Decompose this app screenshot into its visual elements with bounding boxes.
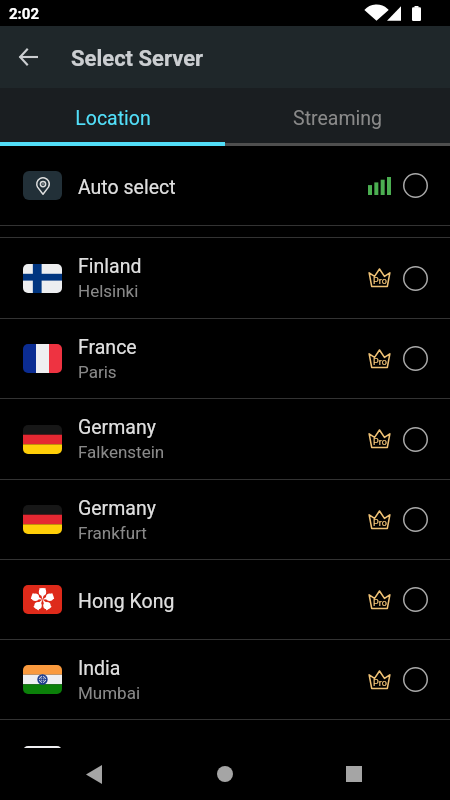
staticText: Falkenstein bbox=[78, 442, 165, 462]
staticText: 2:02 bbox=[9, 5, 40, 23]
button[interactable]: Location bbox=[0, 88, 225, 146]
button[interactable]: Hong Kong bbox=[0, 560, 450, 639]
staticText: Frankfurt bbox=[78, 523, 147, 543]
button[interactable]: Indonesia bbox=[0, 720, 450, 748]
staticText: Pro bbox=[373, 276, 387, 287]
staticText: Auto select bbox=[78, 176, 176, 199]
button[interactable]: Germany bbox=[0, 480, 450, 559]
button[interactable]: Germany bbox=[0, 399, 450, 479]
button[interactable]: Back bbox=[74, 754, 114, 794]
staticText: Hong Kong bbox=[78, 590, 175, 613]
staticText: Pro bbox=[373, 357, 387, 368]
staticText: France bbox=[78, 336, 137, 359]
button[interactable]: France bbox=[0, 319, 450, 398]
button[interactable]: India bbox=[0, 640, 450, 719]
staticText: Pro bbox=[373, 518, 387, 529]
staticText: Location bbox=[75, 107, 151, 130]
button[interactable]: Auto select bbox=[0, 146, 450, 225]
staticText: Streaming bbox=[293, 107, 382, 130]
staticText: Pro bbox=[373, 437, 387, 448]
staticText: Pro bbox=[373, 678, 387, 689]
staticText: Select Server bbox=[71, 46, 204, 72]
button[interactable]: Home bbox=[205, 754, 245, 794]
staticText: Pro bbox=[373, 598, 387, 609]
staticText: Mumbai bbox=[78, 683, 141, 703]
staticText: Helsinki bbox=[78, 281, 139, 301]
button[interactable]: Back bbox=[6, 35, 50, 79]
staticText: Germany bbox=[78, 497, 156, 520]
staticText: Finland bbox=[78, 255, 142, 278]
staticText: Germany bbox=[78, 416, 156, 439]
staticText: India bbox=[78, 657, 121, 680]
button[interactable]: Recents bbox=[334, 754, 374, 794]
button[interactable]: Streaming bbox=[225, 88, 450, 146]
staticText: Paris bbox=[78, 362, 117, 382]
button[interactable]: Finland bbox=[0, 238, 450, 318]
